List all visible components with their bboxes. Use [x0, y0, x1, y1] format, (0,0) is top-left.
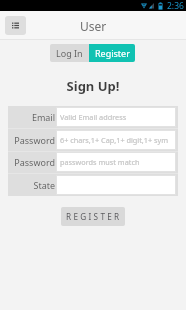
- button[interactable]: 6+ chars,1+ Cap,1+ digit,1+ sym: [56, 130, 176, 150]
- button[interactable]: passwords must match: [56, 152, 176, 172]
- staticText: 2:36: [167, 0, 184, 11]
- staticText: Sign Up!: [0, 77, 186, 95]
- button[interactable]: [56, 175, 176, 195]
- staticText: State: [33, 179, 55, 191]
- button[interactable]: Menu: [5, 16, 26, 35]
- button[interactable]: Register: [89, 44, 135, 62]
- button[interactable]: Valid Email address: [56, 107, 176, 127]
- button[interactable]: REGISTER: [61, 207, 125, 226]
- staticText: Password: [14, 134, 55, 146]
- staticText: 6+ chars,1+ Cap,1+ digit,1+ sym: [60, 135, 169, 145]
- staticText: REGISTER: [66, 211, 122, 222]
- staticText: Valid Email address: [60, 112, 127, 122]
- staticText: passwords must match: [60, 157, 140, 167]
- staticText: Password: [14, 156, 55, 168]
- button[interactable]: Log In: [50, 44, 89, 62]
- staticText: Log In: [56, 47, 83, 59]
- staticText: Email: [31, 111, 55, 123]
- staticText: User: [0, 18, 186, 34]
- staticText: Register: [95, 47, 130, 59]
